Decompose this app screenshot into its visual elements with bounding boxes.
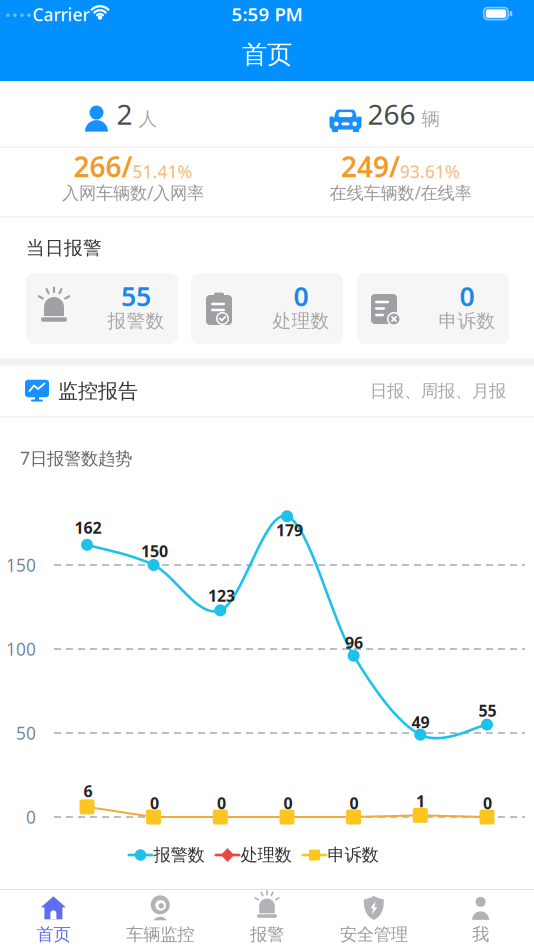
staticText: 50 [16, 721, 36, 744]
staticText: 0 [459, 278, 474, 314]
button[interactable]: 处理数 [214, 842, 292, 868]
staticText: 申诉数 [327, 844, 378, 866]
staticText: 0 [349, 792, 358, 814]
button[interactable]: 0 [357, 273, 509, 344]
button[interactable]: 55 [26, 273, 178, 344]
button[interactable]: 266/ [13, 147, 253, 213]
button[interactable]: 车辆监控 [107, 891, 213, 949]
staticText: 7日报警数趋势 [20, 446, 132, 469]
staticText: 辆 [421, 108, 440, 131]
button[interactable]: 首页 [0, 891, 106, 949]
staticText: 6 [83, 780, 92, 802]
staticText: 0 [150, 792, 159, 814]
staticText: 93.61% [400, 160, 460, 183]
button[interactable]: 报警数 [127, 842, 205, 868]
staticText: 在线车辆数/在线率 [329, 181, 471, 204]
staticText: 安全管理 [340, 924, 408, 945]
staticText: 2 [116, 95, 132, 133]
staticText: 55 [478, 700, 496, 721]
staticText: 100 [6, 637, 36, 660]
button[interactable]: 266 [285, 84, 485, 144]
staticText: 车辆监控 [126, 924, 194, 945]
staticText: 266 [367, 95, 415, 133]
staticText: 处理数 [240, 844, 291, 866]
staticText: 5:59 PM [231, 2, 302, 26]
staticText: 1 [416, 790, 425, 812]
staticText: Carrier [32, 3, 89, 26]
staticText: 我 [472, 924, 489, 945]
button[interactable]: 0 [191, 273, 343, 344]
staticText: 当日报警 [26, 236, 102, 259]
button[interactable]: 报警 [214, 891, 320, 949]
staticText: 0 [26, 805, 36, 828]
button[interactable]: 2 [20, 84, 220, 144]
button[interactable]: 申诉数 [301, 842, 379, 868]
staticText: 首页 [242, 39, 292, 70]
staticText: 123 [208, 585, 235, 606]
staticText: 179 [276, 519, 303, 541]
staticText: 266/ [73, 148, 132, 185]
staticText: 人 [138, 108, 157, 131]
staticText: 249/ [341, 148, 400, 185]
button[interactable]: 监控报告 [0, 366, 534, 416]
button[interactable]: 249/ [280, 147, 520, 213]
button[interactable]: 安全管理 [321, 891, 427, 949]
button[interactable]: 我 [428, 891, 534, 949]
staticText: 监控报告 [58, 379, 138, 403]
staticText: 0 [283, 792, 292, 814]
staticText: 首页 [36, 924, 70, 945]
staticText: 150 [6, 553, 36, 576]
staticText: 162 [74, 517, 101, 538]
staticText: 申诉数 [438, 309, 495, 332]
staticText: 日报、周报、月报 [370, 380, 506, 402]
staticText: 0 [293, 278, 308, 314]
staticText: 处理数 [272, 309, 329, 332]
staticText: 入网车辆数/入网率 [62, 181, 204, 204]
staticText: 报警数 [107, 309, 164, 332]
staticText: 51.41% [132, 160, 192, 183]
staticText: 96 [345, 632, 363, 653]
staticText: 报警 [250, 924, 284, 945]
staticText: 49 [411, 711, 429, 733]
staticText: 0 [217, 792, 226, 814]
staticText: 0 [483, 792, 492, 814]
staticText: 报警数 [153, 844, 204, 866]
staticText: 55 [121, 278, 151, 314]
staticText: 150 [141, 540, 168, 562]
